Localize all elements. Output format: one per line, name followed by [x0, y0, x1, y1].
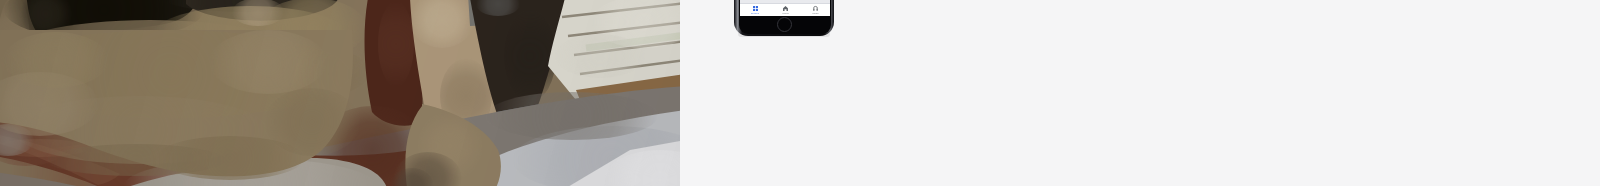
button[interactable]: Home button	[777, 17, 792, 32]
button[interactable]: Listen	[800, 4, 830, 16]
button[interactable]: Browse	[740, 4, 770, 16]
staticText: Browse	[751, 12, 759, 15]
button[interactable]: Home	[770, 4, 800, 16]
staticText: Listen	[812, 12, 819, 15]
staticText: Home	[782, 12, 789, 15]
